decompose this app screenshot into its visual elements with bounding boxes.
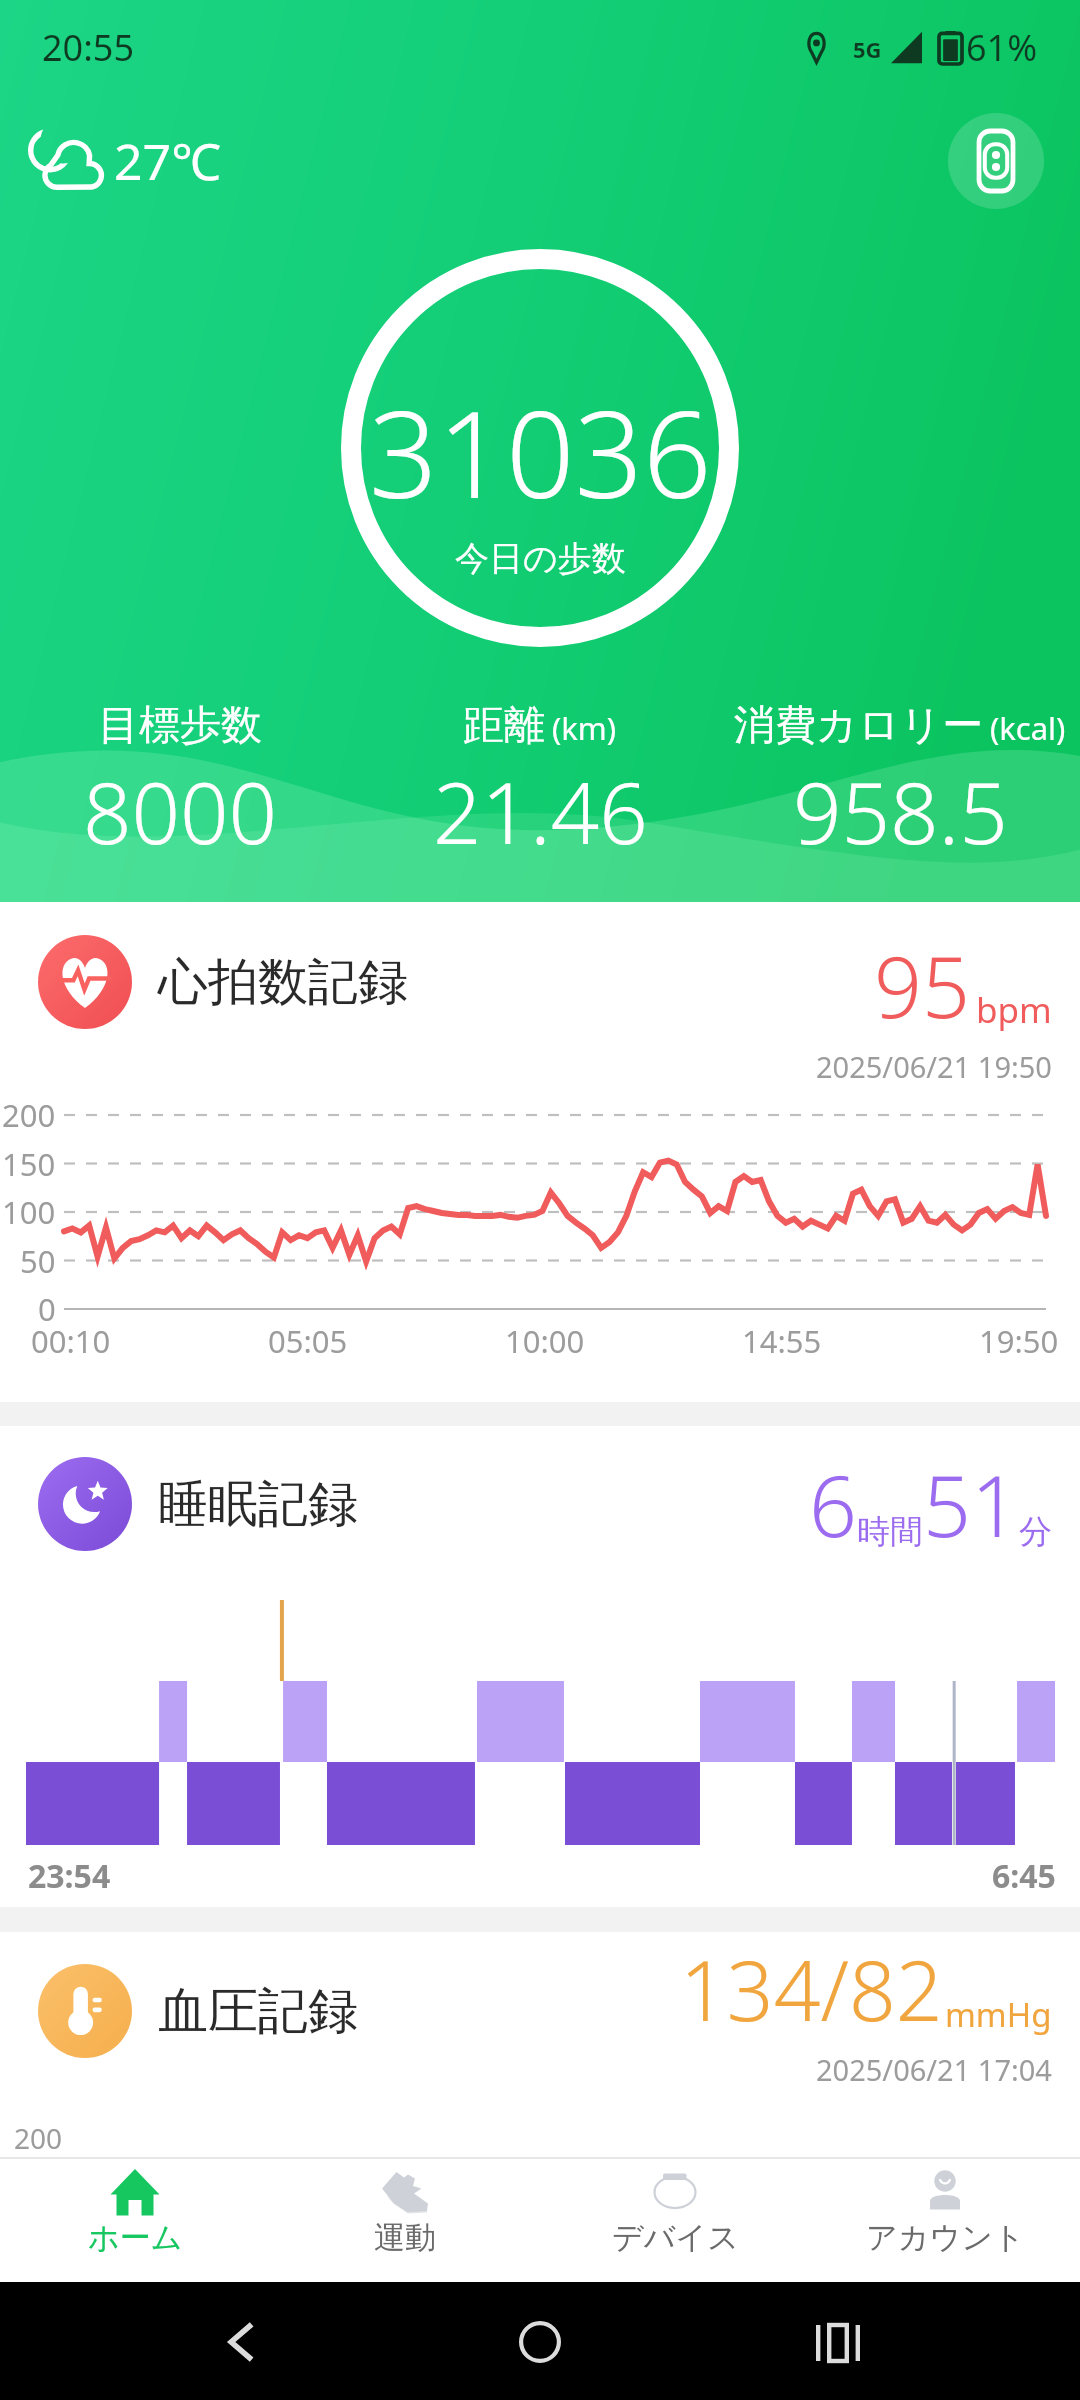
staticText: 14:55 — [742, 1320, 822, 1362]
staticText: 19:50 — [979, 1320, 1059, 1362]
staticText: 31036 — [369, 370, 712, 533]
button[interactable]: アカウント — [810, 2159, 1080, 2282]
staticText: mmHg — [945, 1992, 1052, 2037]
staticText: 目標歩数 — [98, 700, 262, 752]
staticText: 睡眠記録 — [158, 1473, 358, 1536]
staticText: 2025/06/21 17:04 — [816, 2050, 1052, 2089]
staticText: 時間 — [857, 1511, 923, 1553]
staticText: 心拍数記録 — [158, 951, 408, 1014]
staticText: 05:05 — [268, 1320, 348, 1362]
staticText: 6:45 — [992, 1854, 1056, 1898]
staticText: 21.46 — [433, 753, 648, 869]
staticText: 20:55 — [42, 23, 135, 72]
staticText: 距離 — [463, 700, 545, 752]
staticText: 5G — [853, 34, 882, 64]
staticText: 2025/06/21 19:50 — [816, 1047, 1052, 1086]
staticText: 消費カロリー — [734, 700, 983, 752]
staticText: 0 — [38, 1288, 56, 1330]
staticText: デバイス — [612, 2218, 739, 2257]
button[interactable]: Back — [227, 2322, 255, 2362]
staticText: 51 — [923, 1447, 1019, 1561]
staticText: 分 — [1019, 1511, 1052, 1553]
staticText: 100 — [2, 1191, 56, 1233]
button[interactable]: 心拍数記録 — [0, 902, 1080, 1402]
staticText: アカウント — [866, 2218, 1025, 2257]
staticText: 200 — [14, 2119, 63, 2157]
staticText: 61% — [966, 23, 1038, 72]
staticText: 23:54 — [28, 1854, 111, 1898]
button[interactable]: 運動 — [270, 2159, 540, 2282]
staticText: 今日の歩数 — [455, 537, 626, 580]
staticText: 10:00 — [505, 1320, 585, 1362]
button[interactable]: 血圧記録 — [0, 1932, 1080, 2157]
staticText: 8000 — [83, 753, 278, 869]
staticText: 134/82 — [680, 1933, 943, 2045]
staticText: 血圧記録 — [158, 1980, 358, 2043]
button[interactable]: 睡眠記録 — [0, 1426, 1080, 1907]
staticText: ホーム — [88, 2218, 183, 2257]
button[interactable]: ホーム — [0, 2159, 270, 2282]
staticText: 00:10 — [31, 1320, 111, 1362]
staticText: 27℃ — [114, 127, 221, 195]
staticText: 95 — [874, 928, 970, 1042]
button[interactable]: My device — [948, 113, 1044, 209]
staticText: 6 — [809, 1447, 857, 1561]
staticText: bpm — [976, 986, 1052, 1034]
staticText: (kcal) — [990, 707, 1066, 749]
staticText: 150 — [2, 1143, 56, 1185]
button[interactable]: Home — [519, 2321, 561, 2363]
staticText: 50 — [20, 1240, 56, 1282]
button[interactable]: デバイス — [540, 2159, 810, 2282]
staticText: 運動 — [374, 2218, 436, 2257]
staticText: (km) — [552, 707, 617, 749]
button[interactable]: Recent apps — [816, 2325, 860, 2361]
staticText: 200 — [2, 1094, 56, 1136]
staticText: 958.5 — [793, 753, 1008, 869]
